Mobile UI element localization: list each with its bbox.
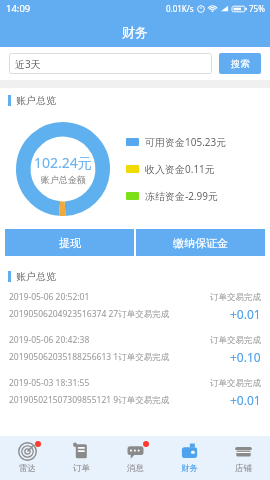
button[interactable]: 缴纳保证金 <box>136 229 265 256</box>
staticText: 财务 <box>181 463 198 474</box>
staticText: 102.24元 <box>34 153 92 172</box>
staticText: 缴纳保证金 <box>173 236 228 250</box>
staticText: 201905062035188256613 1订单交易完成 <box>9 351 170 363</box>
staticText: 订单交易完成 <box>210 378 261 389</box>
button[interactable]: 搜索 <box>219 53 261 74</box>
staticText: 近3天 <box>15 57 41 71</box>
staticText: 消息 <box>127 463 144 474</box>
button[interactable]: 订单 <box>54 436 108 480</box>
staticText: 2019-05-03 18:31:55 <box>9 377 90 389</box>
staticText: 订单 <box>73 463 90 474</box>
staticText: 0.01K/s <box>166 3 194 14</box>
button[interactable]: 2019-05-06 20:52:01 <box>0 287 270 330</box>
staticText: 账户总金额 <box>41 174 86 185</box>
staticText: 账户总览 <box>16 94 56 107</box>
button[interactable]: 消息 <box>108 436 162 480</box>
staticText: +0.10 <box>230 349 261 365</box>
staticText: 20190506204923516374 27订单交易完成 <box>9 308 170 320</box>
staticText: +0.01 <box>230 392 261 408</box>
staticText: 搜索 <box>231 58 250 70</box>
staticText: 可用资金105.23元 <box>145 135 227 149</box>
staticText: 冻结资金-2.99元 <box>145 189 219 203</box>
button[interactable]: 提现 <box>5 229 134 256</box>
staticText: 财务 <box>122 24 148 40</box>
staticText: 账户总览 <box>16 270 56 283</box>
staticText: 订单交易完成 <box>210 335 261 346</box>
staticText: 提现 <box>59 236 81 250</box>
staticText: 店铺 <box>235 463 252 474</box>
staticText: 收入资金0.11元 <box>145 162 215 176</box>
staticText: 2019-05-06 20:42:38 <box>9 334 90 346</box>
staticText: 2019-05-06 20:52:01 <box>9 291 90 303</box>
staticText: 订单交易完成 <box>210 292 261 303</box>
button[interactable]: 店铺 <box>216 436 270 480</box>
staticText: 201905021507309855121 9订单交易完成 <box>9 394 170 406</box>
button[interactable]: 雷达 <box>0 436 54 480</box>
staticText: 雷达 <box>19 463 36 474</box>
staticText: +0.01 <box>230 306 261 322</box>
staticText: 14:09 <box>6 2 31 15</box>
button[interactable]: 2019-05-06 20:42:38 <box>0 330 270 373</box>
button[interactable]: 财务 <box>162 436 216 480</box>
staticText: 75% <box>249 3 265 14</box>
button[interactable]: 近3天 <box>9 53 212 74</box>
button[interactable]: 2019-05-03 18:31:55 <box>0 373 270 416</box>
